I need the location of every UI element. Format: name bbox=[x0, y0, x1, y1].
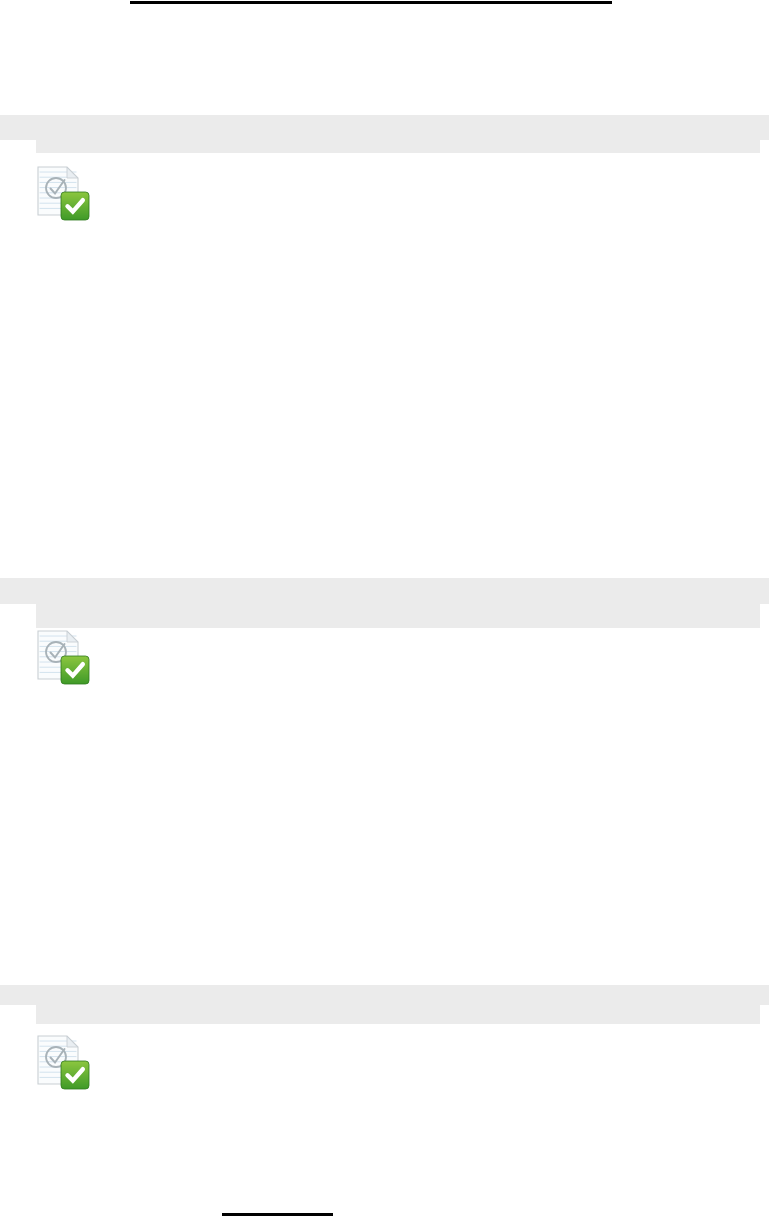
button[interactable]: Completed document bbox=[36, 629, 92, 685]
button[interactable]: Completed document bbox=[36, 165, 92, 221]
button[interactable]: Completed document bbox=[36, 1034, 92, 1090]
